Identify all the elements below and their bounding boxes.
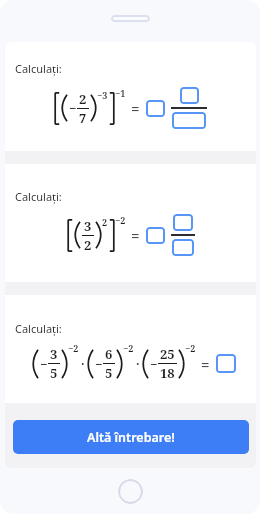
staticText: −2 [68, 342, 79, 354]
staticText: = [131, 98, 140, 118]
button[interactable] [173, 214, 193, 231]
staticText: 7 [79, 109, 87, 127]
staticText: 2 [84, 236, 92, 254]
button[interactable] [146, 227, 165, 244]
staticText: − [150, 355, 158, 373]
staticText: −1 [115, 87, 126, 99]
staticText: · [136, 356, 140, 372]
staticText: Calculați: [15, 321, 62, 336]
staticText: − [69, 99, 77, 117]
staticText: − [95, 355, 103, 373]
staticText: 5 [50, 364, 58, 382]
button[interactable]: Altă întrebare! [13, 420, 249, 454]
staticText: · [81, 356, 85, 372]
button[interactable] [172, 239, 194, 256]
staticText: 3 [50, 345, 58, 363]
button[interactable] [146, 100, 165, 117]
staticText: Calculați: [15, 61, 62, 76]
button[interactable] [172, 112, 206, 129]
staticText: 2 [102, 216, 108, 228]
staticText: = [201, 354, 210, 374]
staticText: −2 [123, 342, 134, 354]
staticText: − [40, 355, 48, 373]
staticText: −2 [115, 214, 126, 226]
staticText: = [131, 225, 140, 245]
button[interactable] [180, 87, 199, 104]
staticText: 5 [105, 364, 113, 382]
staticText: −3 [97, 89, 108, 101]
staticText: 25 [160, 345, 175, 363]
staticText: 3 [84, 217, 92, 235]
staticText: Altă întrebare! [87, 429, 175, 446]
button[interactable] [216, 354, 236, 373]
staticText: Calculați: [15, 189, 62, 204]
staticText: −2 [185, 342, 196, 354]
staticText: 6 [105, 345, 113, 363]
button[interactable] [118, 479, 143, 504]
staticText: 2 [79, 90, 87, 108]
staticText: 18 [160, 364, 175, 382]
